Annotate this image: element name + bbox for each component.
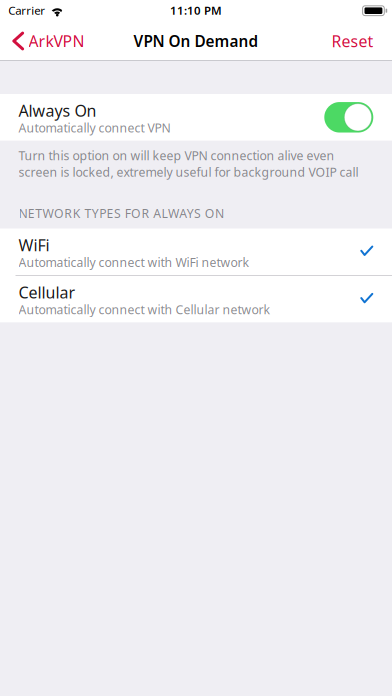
button[interactable]: Always On (0, 94, 392, 141)
staticText: Always On (18, 100, 96, 121)
staticText: Reset (331, 30, 373, 52)
button[interactable]: Reset (317, 22, 392, 60)
staticText: ArkVPN (28, 30, 84, 52)
staticText: Automatically connect with WiFi network (18, 254, 249, 271)
button[interactable]: ArkVPN (0, 22, 94, 60)
staticText: Automatically connect VPN (18, 119, 170, 136)
staticText: Cellular (18, 281, 75, 303)
staticText: VPN On Demand (133, 31, 258, 51)
staticText: 11:10 PM (170, 2, 222, 18)
button[interactable]: WiFi (0, 228, 392, 275)
staticText: Turn this option on will keep VPN connec… (18, 147, 358, 180)
button[interactable]: Cellular (0, 276, 392, 322)
staticText: Automatically connect with Cellular netw… (18, 301, 270, 318)
staticText: WiFi (18, 234, 49, 256)
staticText: Carrier (8, 2, 45, 18)
staticText: NETWORK TYPES FOR ALWAYS ON (18, 205, 224, 221)
